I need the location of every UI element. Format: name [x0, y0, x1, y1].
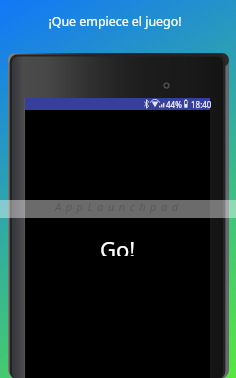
staticText: Go! — [100, 234, 136, 256]
staticText: ¡Que empiece el juego! — [48, 13, 182, 30]
staticText: 18:40 — [191, 99, 212, 110]
staticText: AppLaunchpad — [55, 199, 183, 214]
button[interactable]: Go! — [98, 234, 138, 256]
staticText: 44% — [166, 99, 182, 110]
